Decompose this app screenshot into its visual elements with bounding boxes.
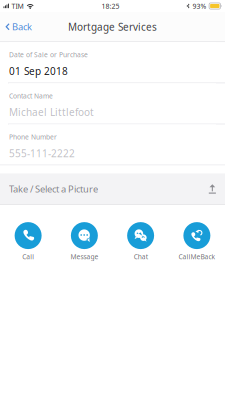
button[interactable]: Chat <box>112 222 169 262</box>
staticText: Date of Sale or Purchase <box>9 50 88 59</box>
button[interactable]: Message <box>56 222 112 262</box>
staticText: Call <box>22 252 34 261</box>
staticText: Take / Select a Picture <box>9 182 98 195</box>
staticText: Message <box>70 252 98 261</box>
button[interactable]: Back <box>0 13 37 41</box>
staticText: Chat <box>134 252 148 261</box>
button[interactable]: Call <box>0 222 56 262</box>
staticText: 555-111-2222 <box>9 146 75 160</box>
staticText: 93% <box>192 1 206 11</box>
staticText: Phone Number <box>9 132 57 141</box>
staticText: 18:25 <box>101 1 119 11</box>
button[interactable]: Take / Select a Picture <box>0 173 225 204</box>
staticText: 01 Sep 2018 <box>9 64 68 78</box>
staticText: CallMeBack <box>178 252 215 261</box>
staticText: Back <box>12 20 32 33</box>
staticText: Contact Name <box>9 91 53 100</box>
staticText: TIM <box>12 1 24 11</box>
button[interactable]: CallMeBack <box>169 222 225 262</box>
staticText: Michael Littlefoot <box>9 105 94 119</box>
staticText: Mortgage Services <box>68 20 157 33</box>
